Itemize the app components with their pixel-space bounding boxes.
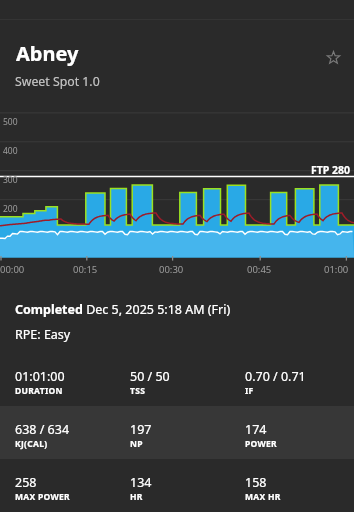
staticText: 500 xyxy=(3,116,18,128)
staticText: RPE: Easy xyxy=(15,326,71,343)
staticText: 01:00 xyxy=(324,263,349,276)
staticText: 174 xyxy=(245,421,267,438)
staticText: FTP 280 xyxy=(311,163,351,177)
staticText: IF xyxy=(245,385,254,397)
staticText: MAX HR xyxy=(245,491,281,503)
staticText: 0.70 / 0.71 xyxy=(245,368,306,385)
staticText: Completed Dec 5, 2025 5:18 AM (Fri) xyxy=(15,301,231,318)
staticText: 300 xyxy=(3,174,18,186)
staticText: Abney xyxy=(16,40,79,67)
staticText: Sweet Spot 1.0 xyxy=(15,73,100,90)
staticText: MAX POWER xyxy=(15,491,70,503)
staticText: KJ(CAL) xyxy=(15,438,48,450)
staticText: 258 xyxy=(15,474,37,491)
staticText: NP xyxy=(130,438,143,450)
staticText: HR xyxy=(130,491,143,503)
staticText: 200 xyxy=(3,203,18,215)
staticText: 50 / 50 xyxy=(130,368,170,385)
staticText: DURATION xyxy=(15,385,63,397)
staticText: 197 xyxy=(130,421,152,438)
staticText: 00:00 xyxy=(0,263,25,276)
staticText: 158 xyxy=(245,474,267,491)
staticText: 00:30 xyxy=(159,263,184,276)
staticText: 134 xyxy=(130,474,152,491)
staticText: 00:15 xyxy=(73,263,98,276)
staticText: 00:45 xyxy=(247,263,272,276)
button[interactable]: Favorite xyxy=(320,44,347,71)
staticText: 638 / 634 xyxy=(15,421,70,438)
staticText: POWER xyxy=(245,438,277,450)
staticText: 01:01:00 xyxy=(15,368,65,385)
staticText: TSS xyxy=(130,385,146,397)
staticText: 400 xyxy=(3,145,18,157)
